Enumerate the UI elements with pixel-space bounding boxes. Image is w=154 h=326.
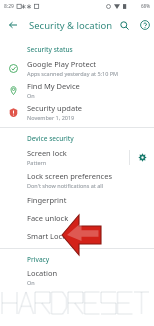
staticText: Screen lock <box>27 148 67 158</box>
button[interactable]: Smart Lock <box>0 227 154 245</box>
staticText: Security update <box>27 103 83 113</box>
button[interactable]: Location <box>0 266 154 288</box>
staticText: On <box>27 92 35 99</box>
staticText: November 1, 2019 <box>27 114 75 121</box>
staticText: Privacy <box>27 255 50 264</box>
staticText: Face unlock <box>27 213 69 223</box>
button[interactable]: Search <box>113 14 135 36</box>
staticText: Security & location <box>29 19 113 32</box>
staticText: Google Play Protect <box>27 59 96 69</box>
staticText: Find My Device <box>27 81 80 91</box>
staticText: Lock screen preferences <box>27 171 113 181</box>
staticText: Fingerprint <box>27 195 67 205</box>
staticText: On <box>27 279 35 286</box>
staticText: Pattern <box>27 159 47 166</box>
button[interactable]: Fingerprint <box>0 191 154 209</box>
staticText: Apps scanned yesterday at 5:10 PM <box>27 70 119 77</box>
button[interactable]: Face unlock <box>0 209 154 227</box>
button[interactable]: Screen lock <box>0 145 129 169</box>
button[interactable]: Google Play Protect <box>0 57 154 79</box>
staticText: Location <box>27 268 58 278</box>
button[interactable]: Help <box>135 14 154 36</box>
staticText: Don't show notifications at all <box>27 182 104 189</box>
staticText: 8:29 <box>4 3 14 10</box>
staticText: Device security <box>27 134 74 143</box>
button[interactable]: Back <box>0 12 26 38</box>
button[interactable]: Find My Device <box>0 79 154 101</box>
button[interactable]: Screen lock settings <box>130 145 154 169</box>
staticText: Security status <box>27 45 73 54</box>
staticText: Smart Lock <box>27 231 67 241</box>
button[interactable]: Lock screen preferences <box>0 169 154 191</box>
staticText: 68% <box>141 3 150 9</box>
button[interactable]: Security update <box>0 101 154 123</box>
